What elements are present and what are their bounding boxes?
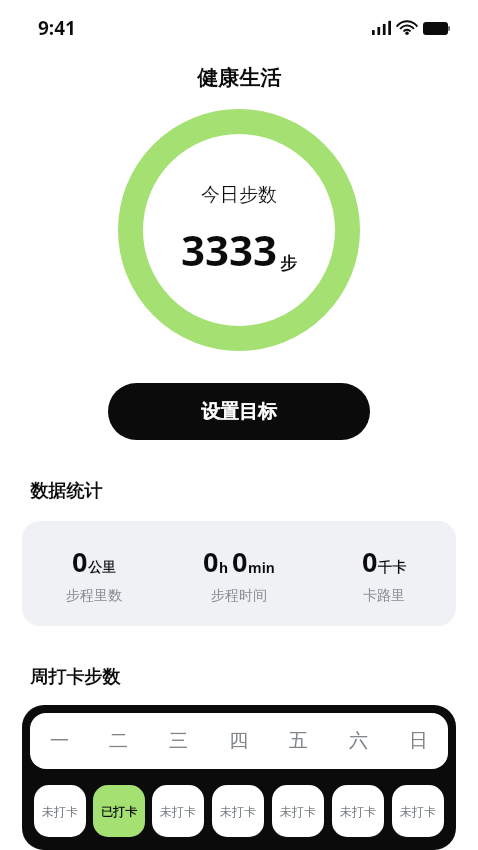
staticText: 三	[169, 729, 188, 753]
staticText: 未打卡	[340, 804, 376, 819]
button[interactable]: 0	[22, 521, 456, 626]
staticText: 日	[409, 729, 428, 753]
staticText: 步程时间	[211, 587, 267, 605]
staticText: 千卡	[378, 559, 406, 577]
staticText: 五	[289, 729, 308, 753]
staticText: 公里	[88, 559, 116, 577]
button[interactable]: 未打卡	[212, 785, 264, 837]
staticText: 设置目标	[201, 400, 277, 424]
staticText: 今日步数	[201, 183, 277, 207]
staticText: 步程里数	[66, 587, 122, 605]
staticText: 健康生活	[197, 65, 281, 91]
staticText: 数据统计	[30, 480, 102, 503]
button[interactable]: 已打卡	[93, 785, 145, 837]
staticText: 二	[109, 729, 128, 753]
button[interactable]: 未打卡	[34, 785, 86, 837]
button[interactable]: 未打卡	[332, 785, 384, 837]
staticText: 一	[50, 729, 69, 753]
staticText: 卡路里	[363, 587, 405, 605]
staticText: 3333	[181, 221, 278, 278]
staticText: 步	[280, 253, 297, 274]
staticText: 未打卡	[42, 804, 78, 819]
staticText: 未打卡	[160, 804, 196, 819]
staticText: 六	[349, 729, 368, 753]
staticText: h	[219, 558, 229, 577]
button[interactable]: 未打卡	[152, 785, 204, 837]
button[interactable]: 未打卡	[272, 785, 324, 837]
staticText: 0	[232, 543, 248, 580]
staticText: 0	[203, 543, 219, 580]
button[interactable]: 未打卡	[392, 785, 444, 837]
staticText: 9:41	[38, 15, 76, 41]
staticText: 周打卡步数	[30, 666, 120, 689]
staticText: min	[248, 558, 275, 577]
staticText: 未打卡	[220, 804, 256, 819]
button[interactable]: 设置目标	[108, 383, 370, 440]
staticText: 未打卡	[280, 804, 316, 819]
staticText: 四	[229, 729, 248, 753]
staticText: 0	[362, 543, 378, 580]
staticText: 未打卡	[400, 804, 436, 819]
staticText: 已打卡	[101, 804, 137, 819]
staticText: 0	[72, 543, 88, 580]
